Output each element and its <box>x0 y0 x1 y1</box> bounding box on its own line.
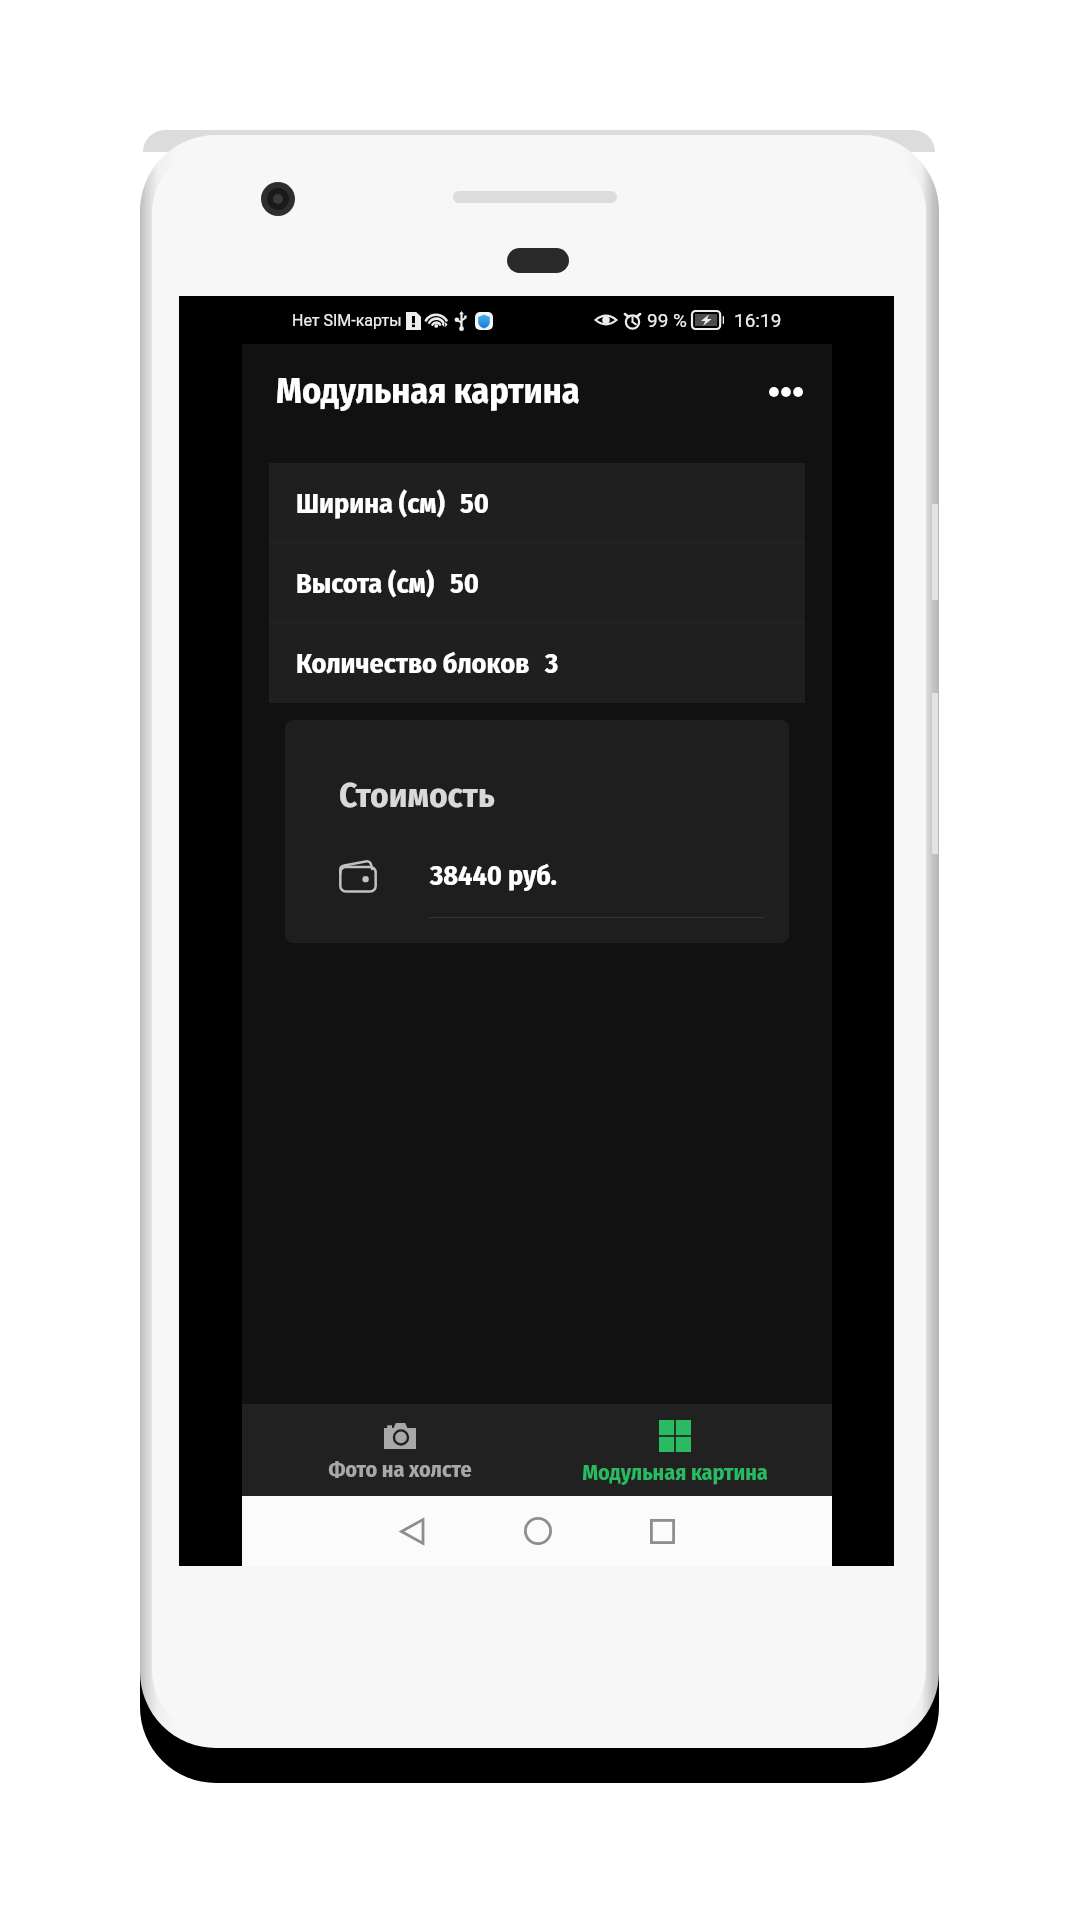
button[interactable]: Recents <box>600 1496 725 1566</box>
button[interactable]: Модульная картина <box>537 1404 812 1496</box>
staticText: 50 <box>450 567 480 601</box>
staticText: 38440 руб. <box>430 859 558 893</box>
staticText: Ширина (см) <box>296 487 445 521</box>
staticText: 16:19 <box>734 309 782 331</box>
button[interactable]: Высота (см) <box>269 543 805 623</box>
staticText: Количество блоков <box>296 647 530 681</box>
staticText: Стоимость <box>339 774 495 816</box>
button[interactable]: Фото на холсте <box>262 1404 537 1496</box>
staticText: 50 <box>460 487 490 521</box>
button[interactable]: Back <box>350 1496 475 1566</box>
staticText: Нет SIM-карты <box>292 311 402 330</box>
staticText: 3 <box>545 647 559 681</box>
button[interactable]: More options <box>751 332 821 451</box>
button[interactable]: Количество блоков <box>269 623 805 703</box>
staticText: Фото на холсте <box>328 1456 472 1482</box>
staticText: 99 % <box>647 309 687 331</box>
button[interactable]: Home <box>475 1496 600 1566</box>
button[interactable]: Ширина (см) <box>269 463 805 543</box>
staticText: Модульная картина <box>276 369 580 412</box>
staticText: Модульная картина <box>582 1459 768 1485</box>
staticText: Высота (см) <box>296 567 435 601</box>
